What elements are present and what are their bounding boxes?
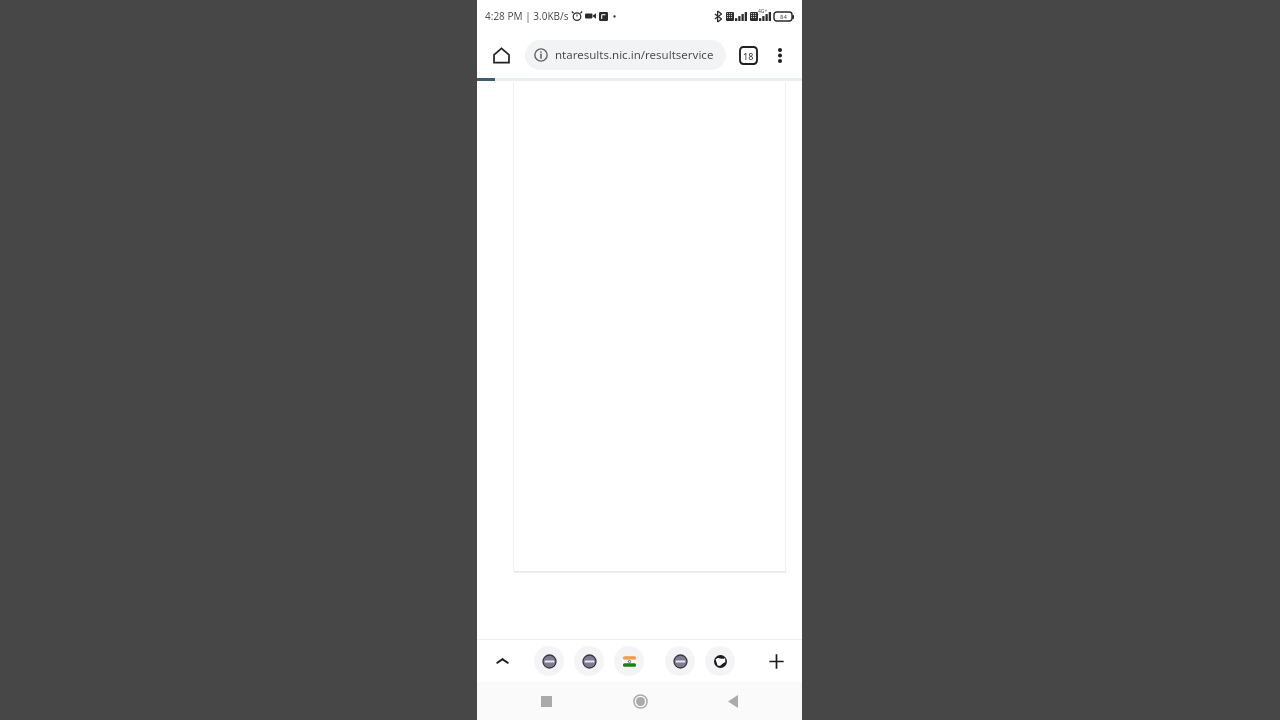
staticText: 4G+ xyxy=(758,8,768,15)
button[interactable]: Home xyxy=(487,41,515,69)
button[interactable]: Recent apps xyxy=(529,684,563,718)
button[interactable]: Emoji suggestion xyxy=(534,646,564,676)
staticText: 18 xyxy=(743,50,754,62)
button[interactable]: Emoji suggestion xyxy=(665,646,695,676)
button[interactable]: Home xyxy=(623,684,657,718)
button[interactable]: Emoji suggestion xyxy=(614,646,644,676)
button[interactable]: Add xyxy=(762,647,790,675)
button[interactable]: More options xyxy=(766,41,794,69)
button[interactable]: Back xyxy=(716,684,750,718)
button[interactable]: Switch tabs, 18 open xyxy=(734,41,762,69)
button[interactable]: Emoji suggestion xyxy=(574,646,604,676)
button[interactable]: Expand suggestions xyxy=(489,648,515,674)
button[interactable]: ntaresults.nic.in/resultservice xyxy=(525,40,726,70)
staticText: 4:28 PM | 3.0KB/s xyxy=(485,9,569,23)
button[interactable]: Emoji suggestion xyxy=(705,646,735,676)
staticText: 84 xyxy=(780,13,787,21)
staticText: ntaresults.nic.in/resultservice xyxy=(555,47,714,63)
